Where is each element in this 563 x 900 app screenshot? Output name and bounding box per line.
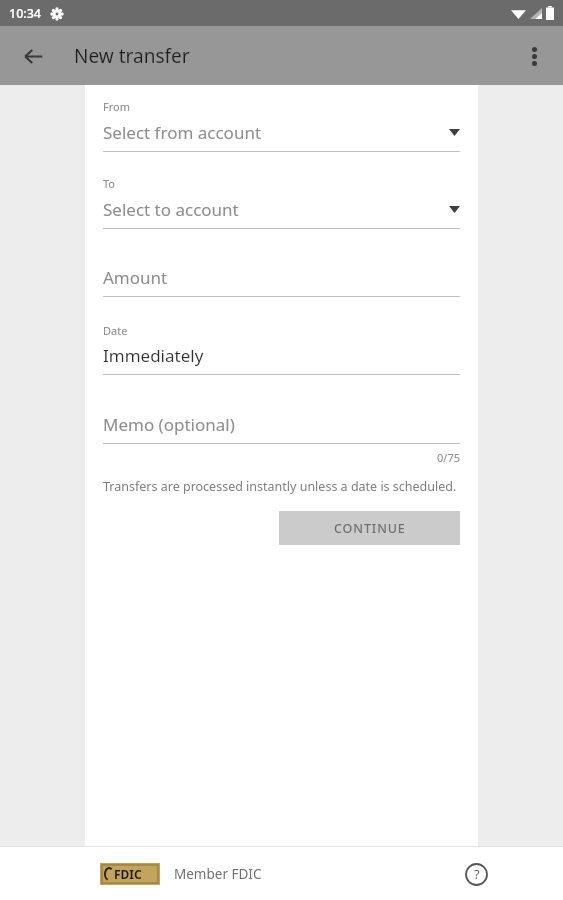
staticText: FDIC — [114, 866, 142, 882]
staticText: Select from account — [103, 121, 449, 144]
staticText: From — [103, 99, 130, 114]
button[interactable]: Back — [10, 33, 56, 79]
staticText: To — [103, 176, 116, 191]
staticText: Transfers are processed instantly unless… — [103, 478, 457, 495]
button[interactable]: Select from account — [103, 121, 460, 152]
staticText: ? — [474, 865, 480, 883]
staticText: Memo (optional) — [103, 413, 460, 436]
staticText: Member FDIC — [174, 865, 262, 883]
button[interactable]: Amount — [103, 266, 460, 297]
staticText: New transfer — [74, 43, 190, 69]
button[interactable]: CONTINUE — [279, 511, 460, 545]
button[interactable]: More options — [512, 34, 556, 78]
button[interactable]: Help — [459, 857, 493, 891]
button[interactable]: Memo (optional) — [103, 413, 460, 444]
staticText: Date — [103, 323, 128, 338]
staticText: 0/75 — [437, 450, 460, 465]
staticText: Immediately — [103, 344, 460, 367]
staticText: Select to account — [103, 198, 449, 221]
staticText: Amount — [103, 266, 460, 289]
button[interactable]: Select to account — [103, 198, 460, 229]
button[interactable]: Immediately — [103, 344, 460, 375]
staticText: CONTINUE — [334, 520, 406, 537]
staticText: 10:34 — [9, 5, 42, 22]
